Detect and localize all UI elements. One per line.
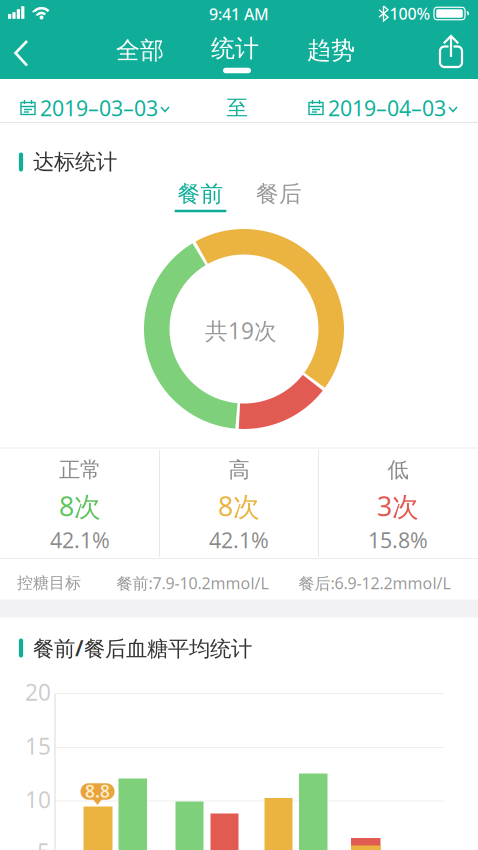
staticText: 餐前/餐后血糖平均统计: [33, 634, 252, 662]
staticText: 餐后:6.9-12.2mmol/L: [298, 572, 450, 594]
staticText: 2019–03–03: [40, 94, 158, 122]
staticText: 10: [25, 784, 51, 814]
button[interactable]: Start date 2019-03-03: [17, 95, 177, 123]
staticText: 控糖目标: [17, 573, 81, 593]
staticText: 正常: [59, 457, 101, 483]
staticText: 20: [25, 677, 51, 707]
staticText: 低: [387, 457, 408, 483]
staticText: 9:41 AM: [209, 3, 269, 25]
staticText: 100%: [389, 3, 430, 24]
staticText: 餐前:7.9-10.2mmol/L: [116, 572, 268, 594]
staticText: 餐前: [177, 180, 223, 208]
button[interactable]: 全部: [105, 27, 175, 73]
staticText: 8次: [218, 488, 260, 524]
button[interactable]: 餐前: [165, 177, 235, 211]
staticText: 15.8%: [368, 526, 428, 554]
staticText: 42.1%: [209, 526, 269, 554]
staticText: 高: [228, 457, 249, 483]
button[interactable]: End date 2019-04-03: [305, 95, 465, 123]
button[interactable]: 餐后: [244, 177, 314, 211]
staticText: 8.8: [85, 779, 110, 802]
staticText: 餐后: [256, 180, 302, 208]
staticText: 3次: [377, 488, 419, 524]
button[interactable]: Share: [439, 35, 463, 69]
staticText: 趋势: [307, 36, 355, 65]
staticText: 5: [37, 836, 50, 850]
staticText: 统计: [211, 34, 259, 63]
button[interactable]: 趋势: [296, 27, 366, 73]
staticText: 至: [226, 95, 247, 121]
staticText: 达标统计: [33, 149, 117, 175]
button[interactable]: Back: [15, 28, 43, 77]
staticText: 42.1%: [50, 526, 110, 554]
staticText: 共19次: [205, 315, 277, 345]
button[interactable]: 统计: [200, 28, 270, 76]
staticText: 2019–04–03: [328, 94, 446, 122]
staticText: 全部: [116, 36, 164, 65]
staticText: 8次: [59, 488, 101, 524]
staticText: 15: [25, 731, 51, 761]
